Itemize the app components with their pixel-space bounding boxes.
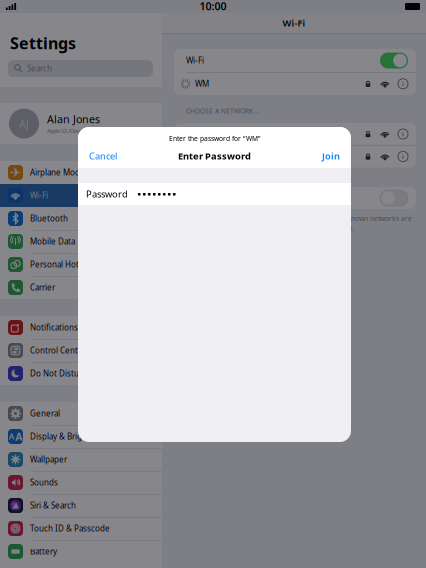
- button[interactable]: Wi-Fi: [174, 49, 416, 72]
- button[interactable]: Mobile Data: [0, 230, 162, 253]
- button[interactable]: WM: [174, 72, 416, 95]
- staticText: Wi-Fi: [282, 17, 305, 29]
- staticText: Wi-Fi: [186, 55, 204, 66]
- staticText: A: [9, 431, 15, 442]
- button[interactable]: BT-WiFi: [174, 145, 416, 167]
- staticText: Apple ID, iCloud, iTunes & App Store: [47, 127, 130, 135]
- button[interactable]: Personal Hotspot: [0, 253, 162, 276]
- button[interactable]: Search: [8, 60, 153, 77]
- staticText: Settings: [10, 32, 76, 54]
- staticText: 10:00: [199, 0, 226, 13]
- staticText: Do Not Disturb: [30, 368, 87, 379]
- button[interactable]: Sounds: [0, 471, 162, 494]
- staticText: BT-WiFi: [186, 151, 213, 162]
- staticText: Cancel: [89, 150, 117, 162]
- button[interactable]: WM: [174, 123, 416, 145]
- staticText: Enter the password for “WM”: [169, 134, 260, 143]
- staticText: Wallpaper: [30, 454, 67, 465]
- button[interactable]: Wi-Fi: [0, 184, 162, 207]
- staticText: Battery: [30, 546, 57, 557]
- staticText: Siri & Search: [30, 500, 76, 511]
- staticText: Known networks will be joined automatica…: [186, 214, 412, 223]
- staticText: Personal Hotspot: [30, 259, 96, 270]
- staticText: WM: [186, 129, 200, 139]
- button[interactable]: Wallpaper: [0, 448, 162, 471]
- button[interactable]: AJ: [0, 103, 162, 144]
- staticText: Airplane Mode: [30, 167, 85, 178]
- staticText: Search: [27, 63, 52, 74]
- staticText: General: [30, 408, 60, 419]
- staticText: ✈: [10, 165, 21, 180]
- staticText: Enter Password: [178, 150, 251, 162]
- button[interactable]: Siri & Search: [0, 494, 162, 517]
- button[interactable]: A: [0, 425, 162, 448]
- staticText: Control Centre: [30, 345, 86, 356]
- staticText: Sounds: [30, 477, 58, 488]
- staticText: Password: [86, 188, 128, 200]
- button[interactable]: Notifications: [0, 316, 162, 339]
- button[interactable]: General: [0, 402, 162, 425]
- button[interactable]: Battery: [0, 540, 162, 563]
- staticText: Alan Jones: [47, 112, 100, 126]
- button[interactable]: Touch ID & Passcode: [0, 517, 162, 540]
- staticText: A: [15, 429, 22, 444]
- staticText: Mobile Data: [30, 236, 75, 247]
- staticText: available, you will have to manually sel…: [186, 224, 355, 233]
- button[interactable]: Control Centre: [0, 339, 162, 362]
- staticText: Display & Brightness: [30, 431, 108, 442]
- button[interactable]: Ask to Join Networks: [174, 187, 416, 209]
- staticText: Bluetooth: [30, 213, 68, 224]
- staticText: ••••••••: [137, 186, 177, 202]
- staticText: Touch ID & Passcode: [30, 523, 110, 534]
- staticText: Wi-Fi: [30, 190, 48, 201]
- button[interactable]: Cancel: [89, 148, 137, 164]
- button[interactable]: Password: [78, 183, 351, 205]
- button[interactable]: Carrier: [0, 276, 162, 299]
- staticText: WM: [195, 78, 209, 89]
- staticText: Carrier: [30, 282, 55, 293]
- button[interactable]: Do Not Disturb: [0, 362, 162, 385]
- button[interactable]: ✈: [0, 161, 162, 184]
- button[interactable]: Bluetooth: [0, 207, 162, 230]
- button[interactable]: Join: [310, 148, 340, 164]
- staticText: AJ: [19, 116, 29, 131]
- staticText: Notifications: [30, 322, 78, 333]
- staticText: CHOOSE A NETWORK...: [186, 107, 259, 115]
- staticText: Join: [322, 150, 340, 162]
